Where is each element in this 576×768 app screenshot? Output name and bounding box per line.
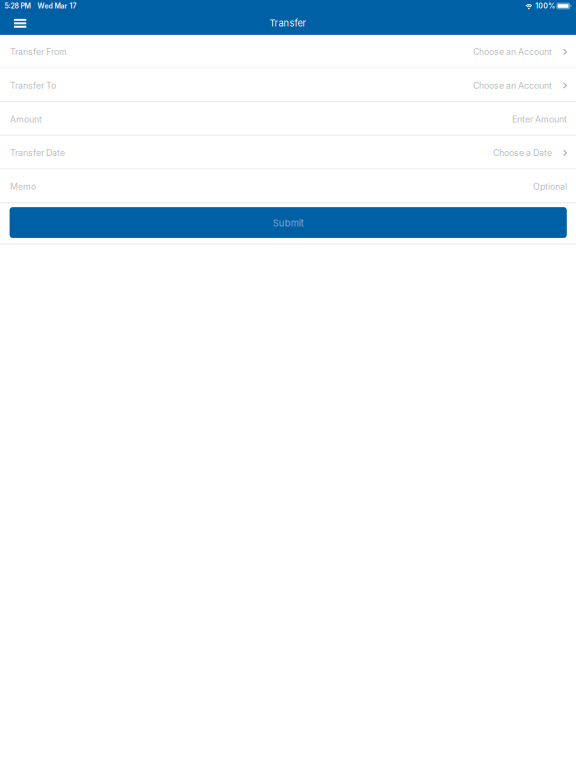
staticText: Enter Amount xyxy=(512,114,567,124)
button[interactable]: Submit xyxy=(10,207,567,238)
button[interactable]: Menu xyxy=(8,12,33,34)
staticText: Choose a Date xyxy=(493,147,552,158)
button[interactable]: Transfer To xyxy=(0,68,576,101)
staticText: Wed Mar 17 xyxy=(37,2,76,10)
staticText: 5:28 PM xyxy=(4,2,30,10)
staticText: Transfer Date xyxy=(10,147,65,158)
button[interactable]: Amount xyxy=(0,102,576,135)
button[interactable]: Transfer Date xyxy=(0,136,576,168)
staticText: 100% xyxy=(535,2,555,10)
staticText: Transfer From xyxy=(10,46,67,57)
staticText: Submit xyxy=(273,217,304,229)
staticText: Amount xyxy=(10,114,42,124)
staticText: Transfer To xyxy=(10,80,56,91)
staticText: Optional xyxy=(533,181,567,192)
button[interactable]: Transfer From xyxy=(0,35,576,67)
button[interactable]: Memo xyxy=(0,170,576,202)
staticText: Choose an Account xyxy=(473,80,552,91)
staticText: Memo xyxy=(10,181,36,192)
staticText: Transfer xyxy=(269,17,306,29)
staticText: Choose an Account xyxy=(473,46,552,57)
